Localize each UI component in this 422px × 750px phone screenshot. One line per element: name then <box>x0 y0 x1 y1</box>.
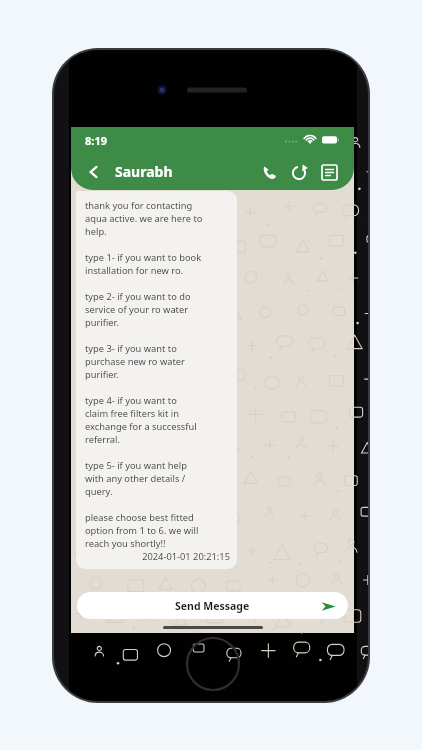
button[interactable]: Back <box>81 159 107 185</box>
staticText: 8:19 <box>85 133 107 148</box>
staticText: Send Message <box>175 599 250 613</box>
button[interactable]: Send Message <box>77 592 348 619</box>
button[interactable]: Call <box>254 157 284 187</box>
staticText: Saurabh <box>115 162 173 181</box>
button[interactable]: thank you for contacting aqua active. we… <box>76 191 237 569</box>
button[interactable]: Send <box>318 596 338 616</box>
staticText: thank you for contacting aqua active. we… <box>85 199 203 550</box>
staticText: 2024-01-01 20:21:15 <box>85 550 230 563</box>
button[interactable]: Details <box>314 157 344 187</box>
button[interactable]: Refresh <box>284 157 314 187</box>
